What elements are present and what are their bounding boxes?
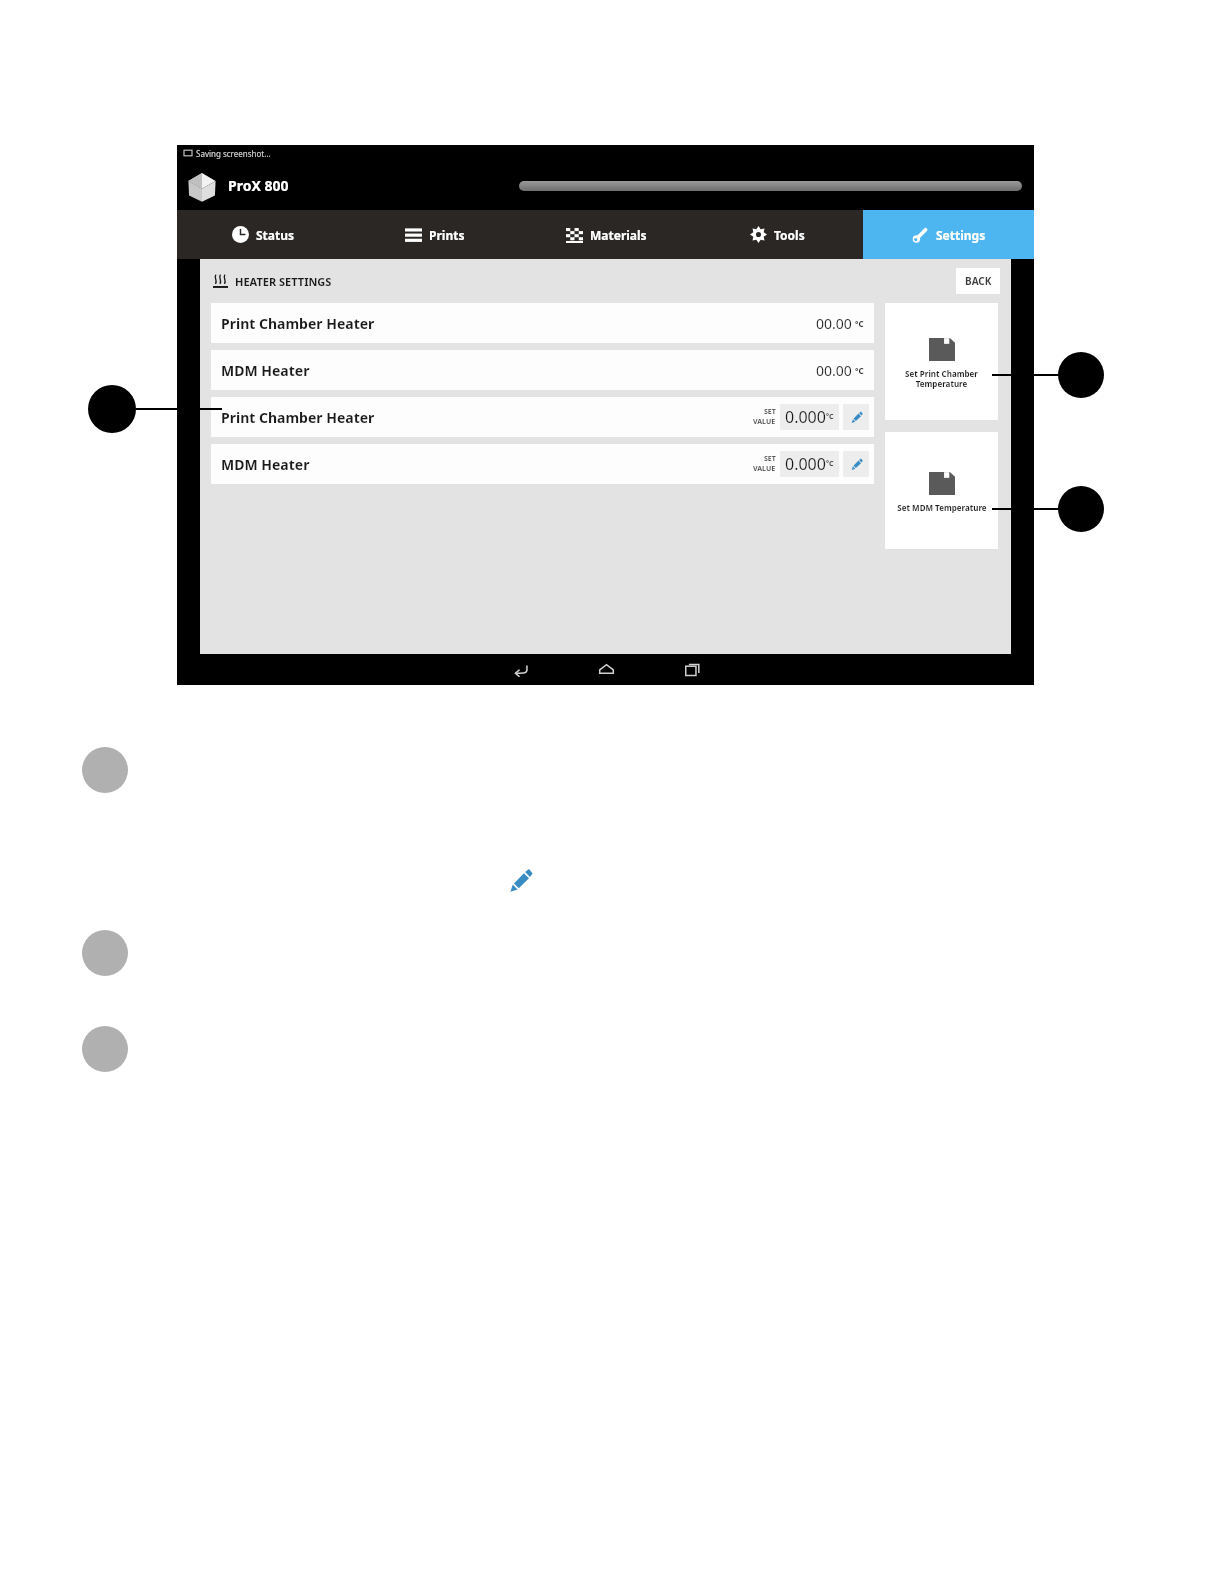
staticText: SET bbox=[764, 454, 776, 464]
staticText: VALUE bbox=[753, 417, 776, 427]
staticText: °C bbox=[855, 365, 864, 376]
button[interactable]: Set Print Chamber Temperature bbox=[885, 303, 998, 420]
button[interactable]: Tools bbox=[692, 210, 863, 259]
button[interactable]: Edit value bbox=[843, 404, 869, 430]
button[interactable]: Settings bbox=[863, 210, 1034, 259]
button[interactable]: Materials bbox=[521, 210, 692, 259]
staticText: Print Chamber Heater bbox=[221, 408, 375, 427]
button[interactable]: Recents bbox=[669, 654, 715, 685]
staticText: Set MDM Temperature bbox=[897, 502, 987, 513]
staticText: Tools bbox=[774, 227, 805, 243]
staticText: °C bbox=[826, 459, 834, 469]
staticText: HEATER SETTINGS bbox=[235, 274, 332, 289]
staticText: Set Print Chamber Temperature bbox=[905, 368, 978, 389]
staticText: Print Chamber Heater bbox=[221, 314, 375, 333]
staticText: 00.00 bbox=[816, 361, 852, 380]
staticText: Status bbox=[256, 227, 295, 243]
staticText: 00.00 bbox=[816, 314, 852, 333]
button[interactable]: Prints bbox=[349, 210, 521, 259]
staticText: °C bbox=[826, 412, 834, 422]
staticText: MDM Heater bbox=[221, 455, 310, 474]
button[interactable]: MDM Heater bbox=[211, 444, 874, 484]
button[interactable]: Back bbox=[497, 654, 543, 685]
button[interactable]: Edit value bbox=[843, 451, 869, 477]
button[interactable]: Set MDM Temperature bbox=[885, 432, 998, 549]
staticText: 0.000 bbox=[785, 453, 826, 475]
staticText: 0.000 bbox=[785, 406, 826, 428]
button[interactable]: Print Chamber Heater bbox=[211, 303, 874, 343]
staticText: BACK bbox=[965, 274, 992, 288]
button[interactable]: MDM Heater bbox=[211, 350, 874, 390]
button[interactable]: Print Chamber Heater bbox=[211, 397, 874, 437]
staticText: MDM Heater bbox=[221, 361, 310, 380]
button[interactable]: Home bbox=[583, 654, 629, 685]
staticText: Materials bbox=[590, 227, 647, 243]
staticText: VALUE bbox=[753, 464, 776, 474]
button[interactable]: Status bbox=[177, 210, 349, 259]
staticText: Saving screenshot... bbox=[196, 148, 271, 159]
staticText: Settings bbox=[936, 227, 986, 243]
staticText: °C bbox=[855, 318, 864, 329]
staticText: SET bbox=[764, 407, 776, 417]
button[interactable]: BACK bbox=[956, 268, 1000, 294]
staticText: Prints bbox=[429, 227, 465, 243]
staticText: ProX 800 bbox=[228, 176, 289, 195]
